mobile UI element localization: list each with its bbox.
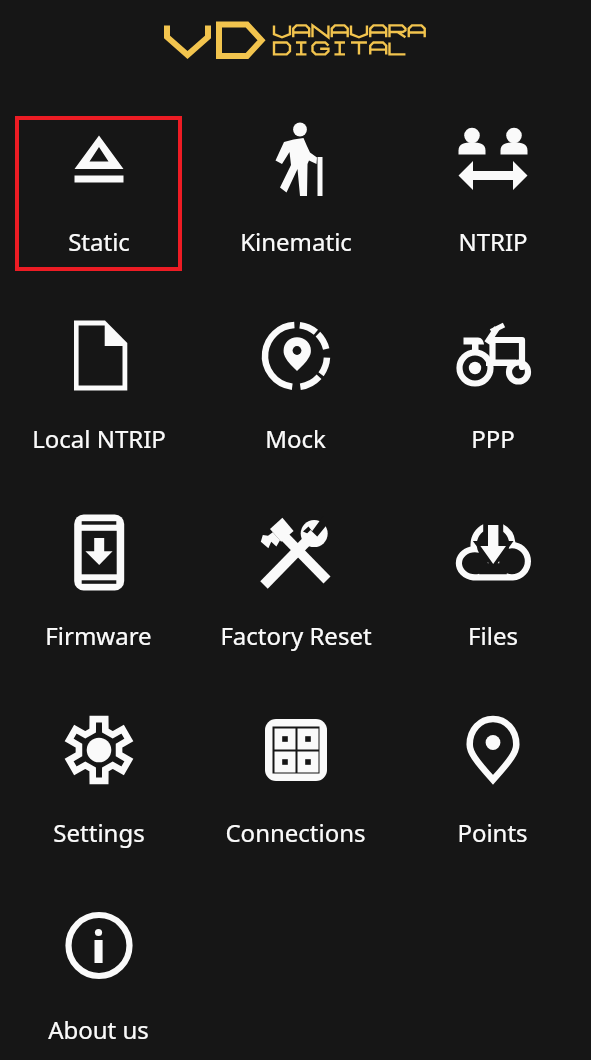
button[interactable]: Firmware: [15, 510, 182, 665]
button[interactable]: Settings: [15, 707, 182, 862]
staticText: About us: [48, 1013, 149, 1046]
staticText: PPP: [471, 422, 515, 455]
staticText: Settings: [53, 816, 145, 849]
staticText: Firmware: [45, 619, 152, 652]
button[interactable]: NTRIP: [409, 116, 576, 271]
staticText: Kinematic: [240, 225, 352, 258]
staticText: NTRIP: [458, 225, 528, 258]
staticText: Points: [457, 816, 528, 849]
button[interactable]: Local NTRIP: [15, 313, 182, 468]
button[interactable]: Mock: [212, 313, 379, 468]
staticText: Mock: [265, 422, 326, 455]
staticText: Connections: [225, 816, 366, 849]
button[interactable]: PPP: [409, 313, 576, 468]
button[interactable]: About us: [15, 904, 182, 1059]
button[interactable]: Static: [15, 116, 182, 271]
button[interactable]: Connections: [212, 707, 379, 862]
staticText: Factory Reset: [220, 619, 372, 652]
button[interactable]: Points: [409, 707, 576, 862]
staticText: Static: [68, 225, 130, 258]
button[interactable]: Factory Reset: [212, 510, 379, 665]
staticText: Local NTRIP: [32, 422, 166, 455]
button[interactable]: Kinematic: [212, 116, 379, 271]
button[interactable]: Files: [409, 510, 576, 665]
staticText: Files: [468, 619, 518, 652]
